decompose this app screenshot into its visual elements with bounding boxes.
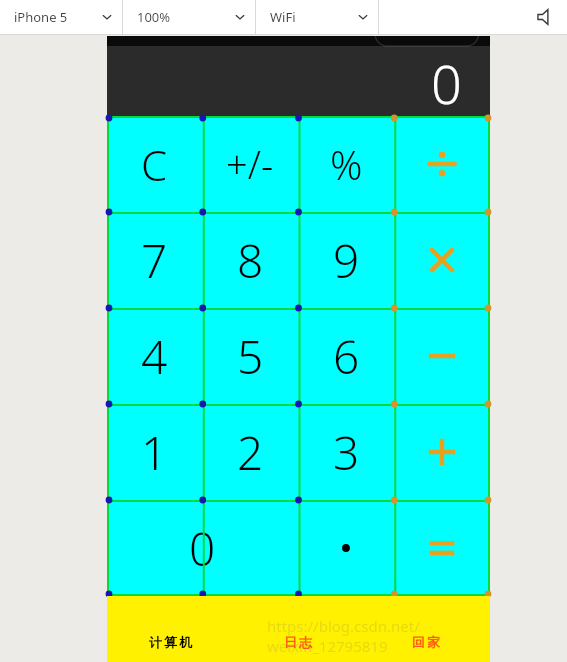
button[interactable]: Subtract (394, 308, 490, 404)
button[interactable]: 0 (107, 500, 298, 596)
staticText: 计算机 (148, 634, 193, 650)
staticText: % (330, 137, 363, 191)
button[interactable]: 计算机 (107, 596, 234, 662)
staticText: 日志 (283, 634, 313, 650)
button[interactable]: Add (394, 404, 490, 500)
button[interactable]: iPhone 5 (0, 0, 122, 34)
staticText: 8 (237, 229, 264, 292)
button[interactable]: 100% (123, 0, 255, 34)
staticText: WiFi (270, 8, 296, 26)
staticText: C (141, 136, 168, 193)
staticText: 100% (137, 8, 171, 26)
staticText: 9 (333, 229, 360, 292)
staticText: 2 (237, 421, 264, 484)
button[interactable]: WiFi (256, 0, 378, 34)
staticText: 1 (141, 421, 168, 484)
button[interactable]: Divide (394, 116, 490, 212)
button[interactable]: 3 (298, 404, 394, 500)
staticText: iPhone 5 (14, 8, 68, 26)
staticText: 4 (141, 325, 168, 388)
button[interactable]: % (298, 116, 394, 212)
button[interactable]: 8 (202, 212, 298, 308)
button[interactable]: Equals (394, 500, 490, 596)
staticText: https://blog.csdn.net/weixin_12795819 (267, 616, 490, 656)
button[interactable]: +/- (202, 116, 298, 212)
staticText: 0 (189, 517, 216, 580)
button[interactable]: 2 (202, 404, 298, 500)
staticText: 0 (431, 46, 462, 114)
button[interactable]: 日志 (234, 596, 362, 662)
button[interactable]: 4 (107, 308, 202, 404)
button[interactable]: C (107, 116, 202, 212)
button[interactable]: 回家 (362, 596, 490, 662)
staticText: 7 (141, 229, 168, 292)
button[interactable]: 6 (298, 308, 394, 404)
button[interactable]: 9 (298, 212, 394, 308)
staticText: 回家 (411, 634, 441, 650)
button[interactable]: Network throttling (523, 0, 567, 34)
staticText: 5 (237, 325, 264, 388)
button[interactable]: 7 (107, 212, 202, 308)
button[interactable]: 1 (107, 404, 202, 500)
button[interactable] (298, 500, 394, 596)
staticText: 6 (333, 325, 360, 388)
button[interactable]: Multiply (394, 212, 490, 308)
button[interactable]: 5 (202, 308, 298, 404)
staticText: 3 (333, 421, 360, 484)
staticText: +/- (226, 138, 274, 190)
